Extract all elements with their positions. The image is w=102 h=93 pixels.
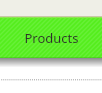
staticText: Products xyxy=(24,29,79,47)
button[interactable]: Products xyxy=(0,17,102,58)
